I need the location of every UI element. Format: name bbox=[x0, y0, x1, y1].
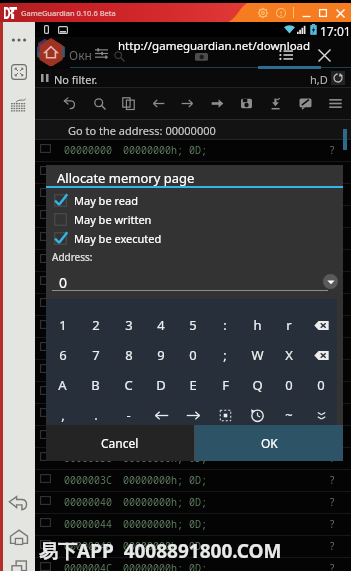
button[interactable]: Edit bbox=[293, 91, 317, 115]
button[interactable]: 00000008 bbox=[35, 184, 351, 206]
button[interactable]: May be written bbox=[46, 210, 343, 229]
button[interactable]: 4 bbox=[145, 313, 177, 337]
button[interactable]: More options bbox=[6, 27, 31, 52]
button[interactable]: Minimize bbox=[299, 6, 313, 20]
button[interactable]: 00000004 bbox=[35, 162, 351, 184]
button[interactable]: Keyboard mapping bbox=[6, 92, 31, 117]
button[interactable]: Back bbox=[5, 489, 32, 516]
button[interactable]: 0000004C bbox=[35, 558, 351, 571]
button[interactable]: Refresh bbox=[331, 71, 345, 85]
button[interactable]: Maximize bbox=[316, 6, 330, 20]
button[interactable]: D bbox=[145, 373, 177, 397]
button[interactable]: 5 bbox=[177, 313, 209, 337]
button[interactable] bbox=[241, 403, 273, 427]
button[interactable]: X bbox=[273, 343, 305, 367]
button[interactable]: 00000010 bbox=[35, 228, 351, 250]
button[interactable]: 7 bbox=[79, 343, 112, 367]
button[interactable]: r bbox=[273, 313, 305, 337]
staticText: 00000008 bbox=[64, 187, 112, 201]
button[interactable]: 8 bbox=[112, 343, 145, 367]
button[interactable]: 00000034 bbox=[35, 426, 351, 448]
button[interactable]: h bbox=[241, 313, 273, 337]
button[interactable]: May be executed bbox=[46, 229, 343, 248]
button[interactable]: , bbox=[46, 403, 79, 427]
staticText: 00000000h; 0D; bbox=[123, 517, 207, 531]
staticText: ? bbox=[330, 473, 335, 487]
button[interactable]: 00000000 bbox=[35, 140, 351, 162]
button[interactable]: OK bbox=[195, 425, 343, 461]
button[interactable]: Cancel bbox=[46, 425, 194, 461]
staticText: C bbox=[124, 376, 133, 394]
button[interactable]: Undo bbox=[57, 91, 81, 115]
button[interactable]: : bbox=[209, 313, 241, 337]
button[interactable]: Previous bbox=[146, 91, 170, 115]
button[interactable]: 00000018 bbox=[35, 272, 351, 294]
button[interactable]: A bbox=[46, 373, 79, 397]
button[interactable]: 0 bbox=[305, 373, 337, 397]
staticText: E bbox=[189, 376, 197, 394]
button[interactable] bbox=[305, 313, 337, 337]
button[interactable]: 0000001C bbox=[35, 294, 351, 316]
button[interactable]: Next bbox=[175, 91, 199, 115]
button[interactable]: F bbox=[209, 373, 241, 397]
button[interactable]: 0000003C bbox=[35, 470, 351, 492]
button[interactable]: Settings bbox=[255, 5, 270, 20]
button[interactable]: 9 bbox=[145, 343, 177, 367]
button[interactable]: B bbox=[79, 373, 112, 397]
staticText: 3 bbox=[125, 316, 133, 334]
button[interactable] bbox=[305, 403, 337, 427]
button[interactable]: 1 bbox=[46, 313, 79, 337]
button[interactable] bbox=[305, 343, 337, 367]
button[interactable] bbox=[177, 403, 209, 427]
button[interactable]: ; bbox=[209, 343, 241, 367]
button[interactable]: 0 bbox=[273, 373, 305, 397]
button[interactable]: 00000038 bbox=[35, 448, 351, 470]
button[interactable]: Home bbox=[5, 523, 32, 550]
button[interactable]: 00000020 bbox=[35, 316, 351, 338]
button[interactable]: May be read bbox=[46, 191, 343, 210]
button[interactable]: Copy bbox=[116, 91, 140, 115]
button[interactable] bbox=[145, 403, 177, 427]
staticText: 00000000h; 0D; bbox=[123, 231, 207, 245]
button[interactable]: . bbox=[79, 403, 112, 427]
button[interactable]: Load bbox=[264, 91, 288, 115]
button[interactable]: 6 bbox=[46, 343, 79, 367]
button[interactable]: Close bbox=[314, 45, 334, 65]
button[interactable]: ~ bbox=[273, 403, 305, 427]
button[interactable]: Fullscreen bbox=[6, 59, 31, 84]
button[interactable]: Close bbox=[333, 6, 347, 20]
button[interactable]: E bbox=[177, 373, 209, 397]
button[interactable]: 3 bbox=[112, 313, 145, 337]
button[interactable]: Q bbox=[241, 373, 273, 397]
button[interactable]: Help bbox=[273, 5, 288, 20]
button[interactable]: 0 bbox=[177, 343, 209, 367]
button[interactable] bbox=[209, 403, 241, 427]
button[interactable]: 00000040 bbox=[35, 492, 351, 514]
button[interactable]: 0000002C bbox=[35, 382, 351, 404]
button[interactable]: C bbox=[112, 373, 145, 397]
button[interactable]: 00000048 bbox=[35, 536, 351, 558]
button[interactable]: W bbox=[241, 343, 273, 367]
button[interactable]: Show history bbox=[323, 274, 338, 289]
button[interactable]: 2 bbox=[79, 313, 112, 337]
staticText: 5 bbox=[189, 316, 197, 334]
button[interactable]: - bbox=[112, 403, 145, 427]
button[interactable]: 00000044 bbox=[35, 514, 351, 536]
staticText: Окн bbox=[69, 47, 92, 63]
button[interactable]: Tabs bbox=[276, 45, 296, 65]
staticText: 00000018 bbox=[64, 275, 112, 289]
button[interactable]: 00000024 bbox=[35, 338, 351, 360]
button[interactable]: 00000030 bbox=[35, 404, 351, 426]
button[interactable]: Recent apps bbox=[5, 554, 32, 571]
button[interactable]: Save bbox=[234, 91, 258, 115]
staticText: : bbox=[223, 316, 227, 334]
button[interactable]: 0000000C bbox=[35, 206, 351, 228]
staticText: 00000000h; 0D; bbox=[123, 297, 207, 311]
button[interactable]: Search bbox=[87, 91, 111, 115]
button[interactable]: Menu bbox=[323, 91, 347, 115]
button[interactable]: Go to bbox=[205, 91, 229, 115]
button[interactable]: 00000028 bbox=[35, 360, 351, 382]
button[interactable]: 00000014 bbox=[35, 250, 351, 272]
